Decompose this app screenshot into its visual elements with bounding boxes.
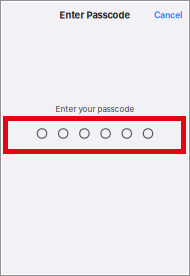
button[interactable]: Passcode digit — [101, 129, 110, 138]
button[interactable]: Cancel — [150, 5, 186, 25]
button[interactable]: Passcode digit — [122, 129, 131, 138]
button[interactable]: Passcode digit — [37, 129, 47, 138]
button[interactable]: Passcode digit — [80, 129, 89, 138]
staticText: Enter your passcode — [55, 104, 134, 114]
staticText: Cancel — [154, 10, 182, 20]
staticText: Enter Passcode — [59, 9, 130, 21]
button[interactable]: Passcode digit — [58, 129, 68, 138]
button[interactable]: Passcode digit — [143, 129, 153, 138]
